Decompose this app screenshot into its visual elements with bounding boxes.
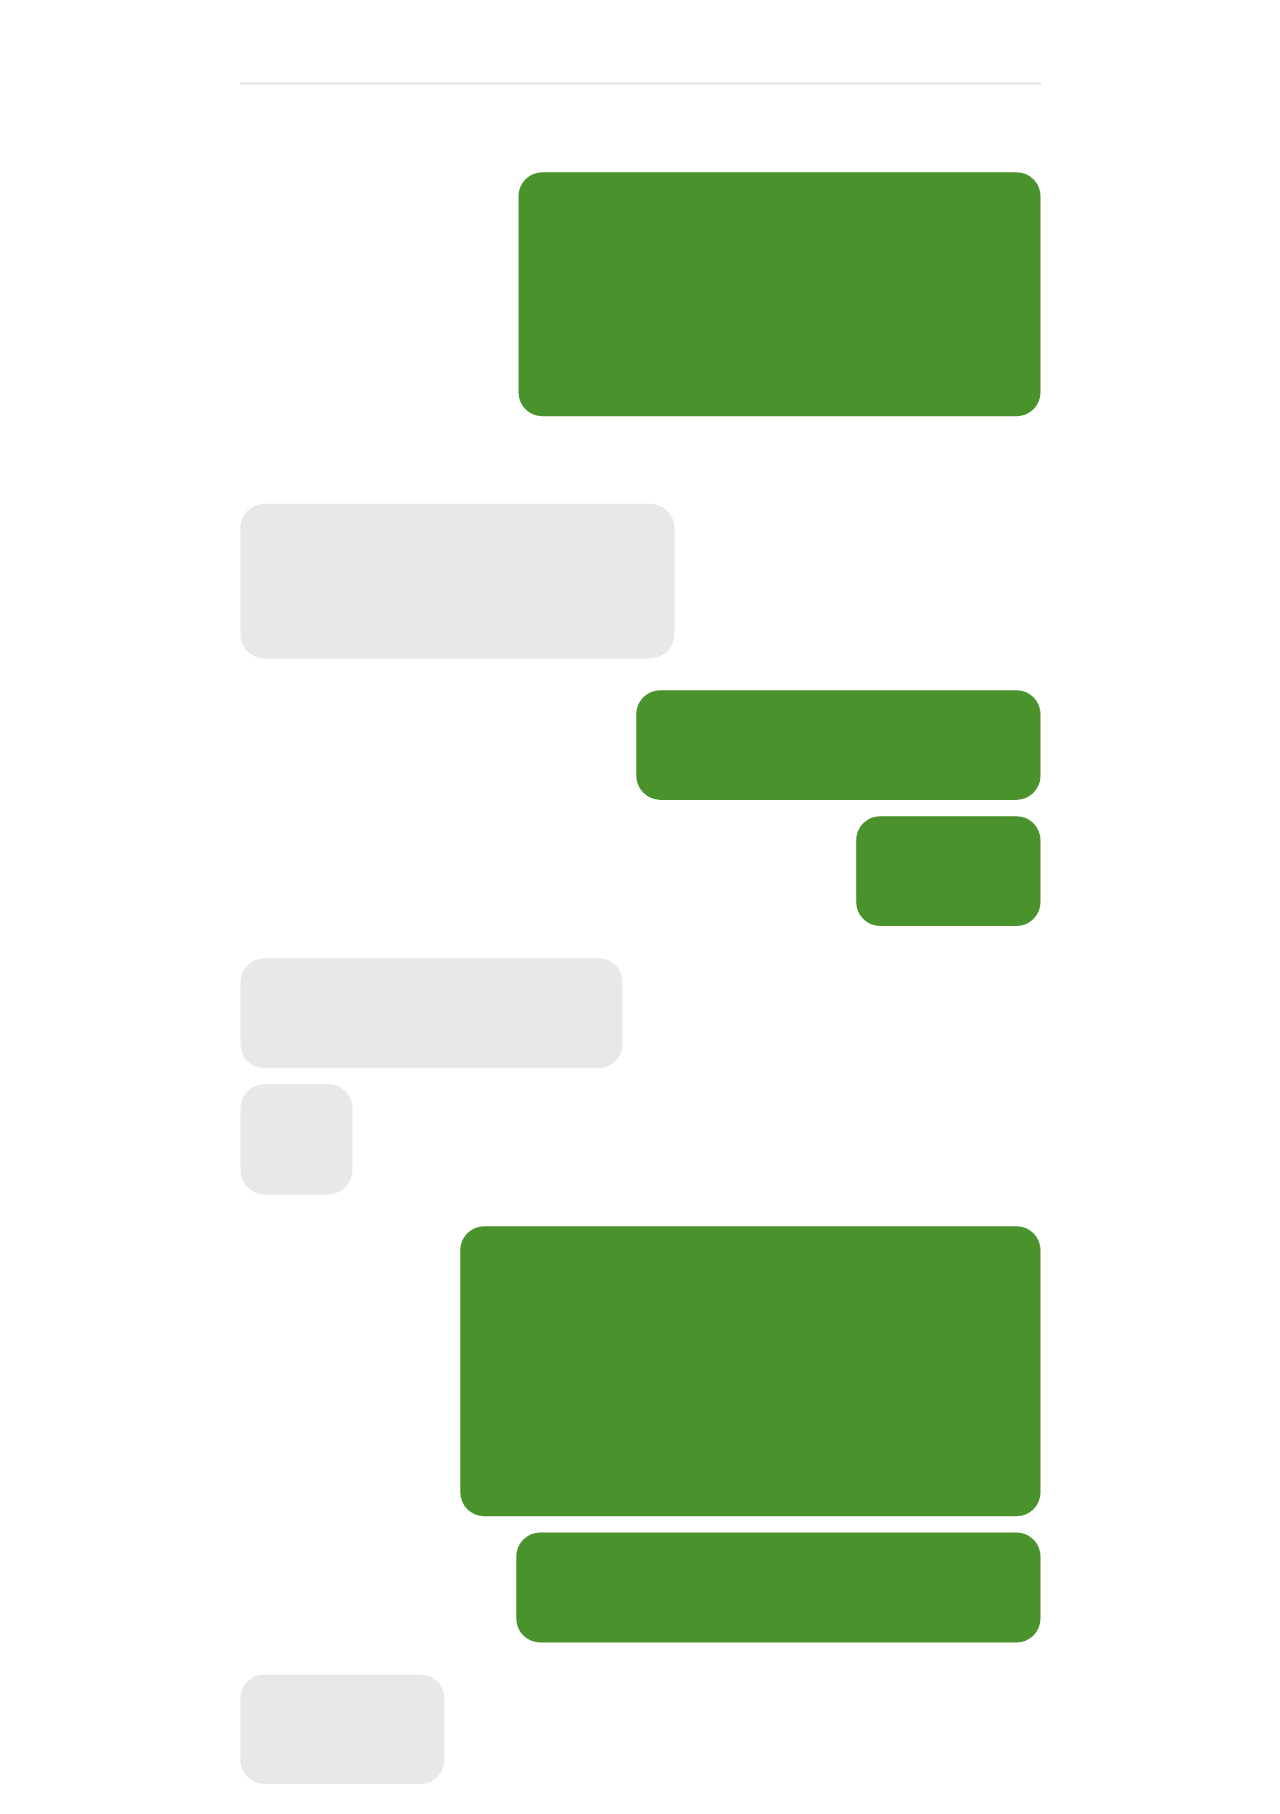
button[interactable]: Sent message [519,172,1041,416]
button[interactable]: Sent message [637,690,1041,800]
button[interactable]: Received message [241,1674,445,1784]
button[interactable]: Received message [241,1084,353,1194]
button[interactable]: Sent message [517,1533,1041,1643]
button[interactable]: Sent message [857,816,1041,926]
button[interactable]: Sent message [461,1226,1041,1516]
